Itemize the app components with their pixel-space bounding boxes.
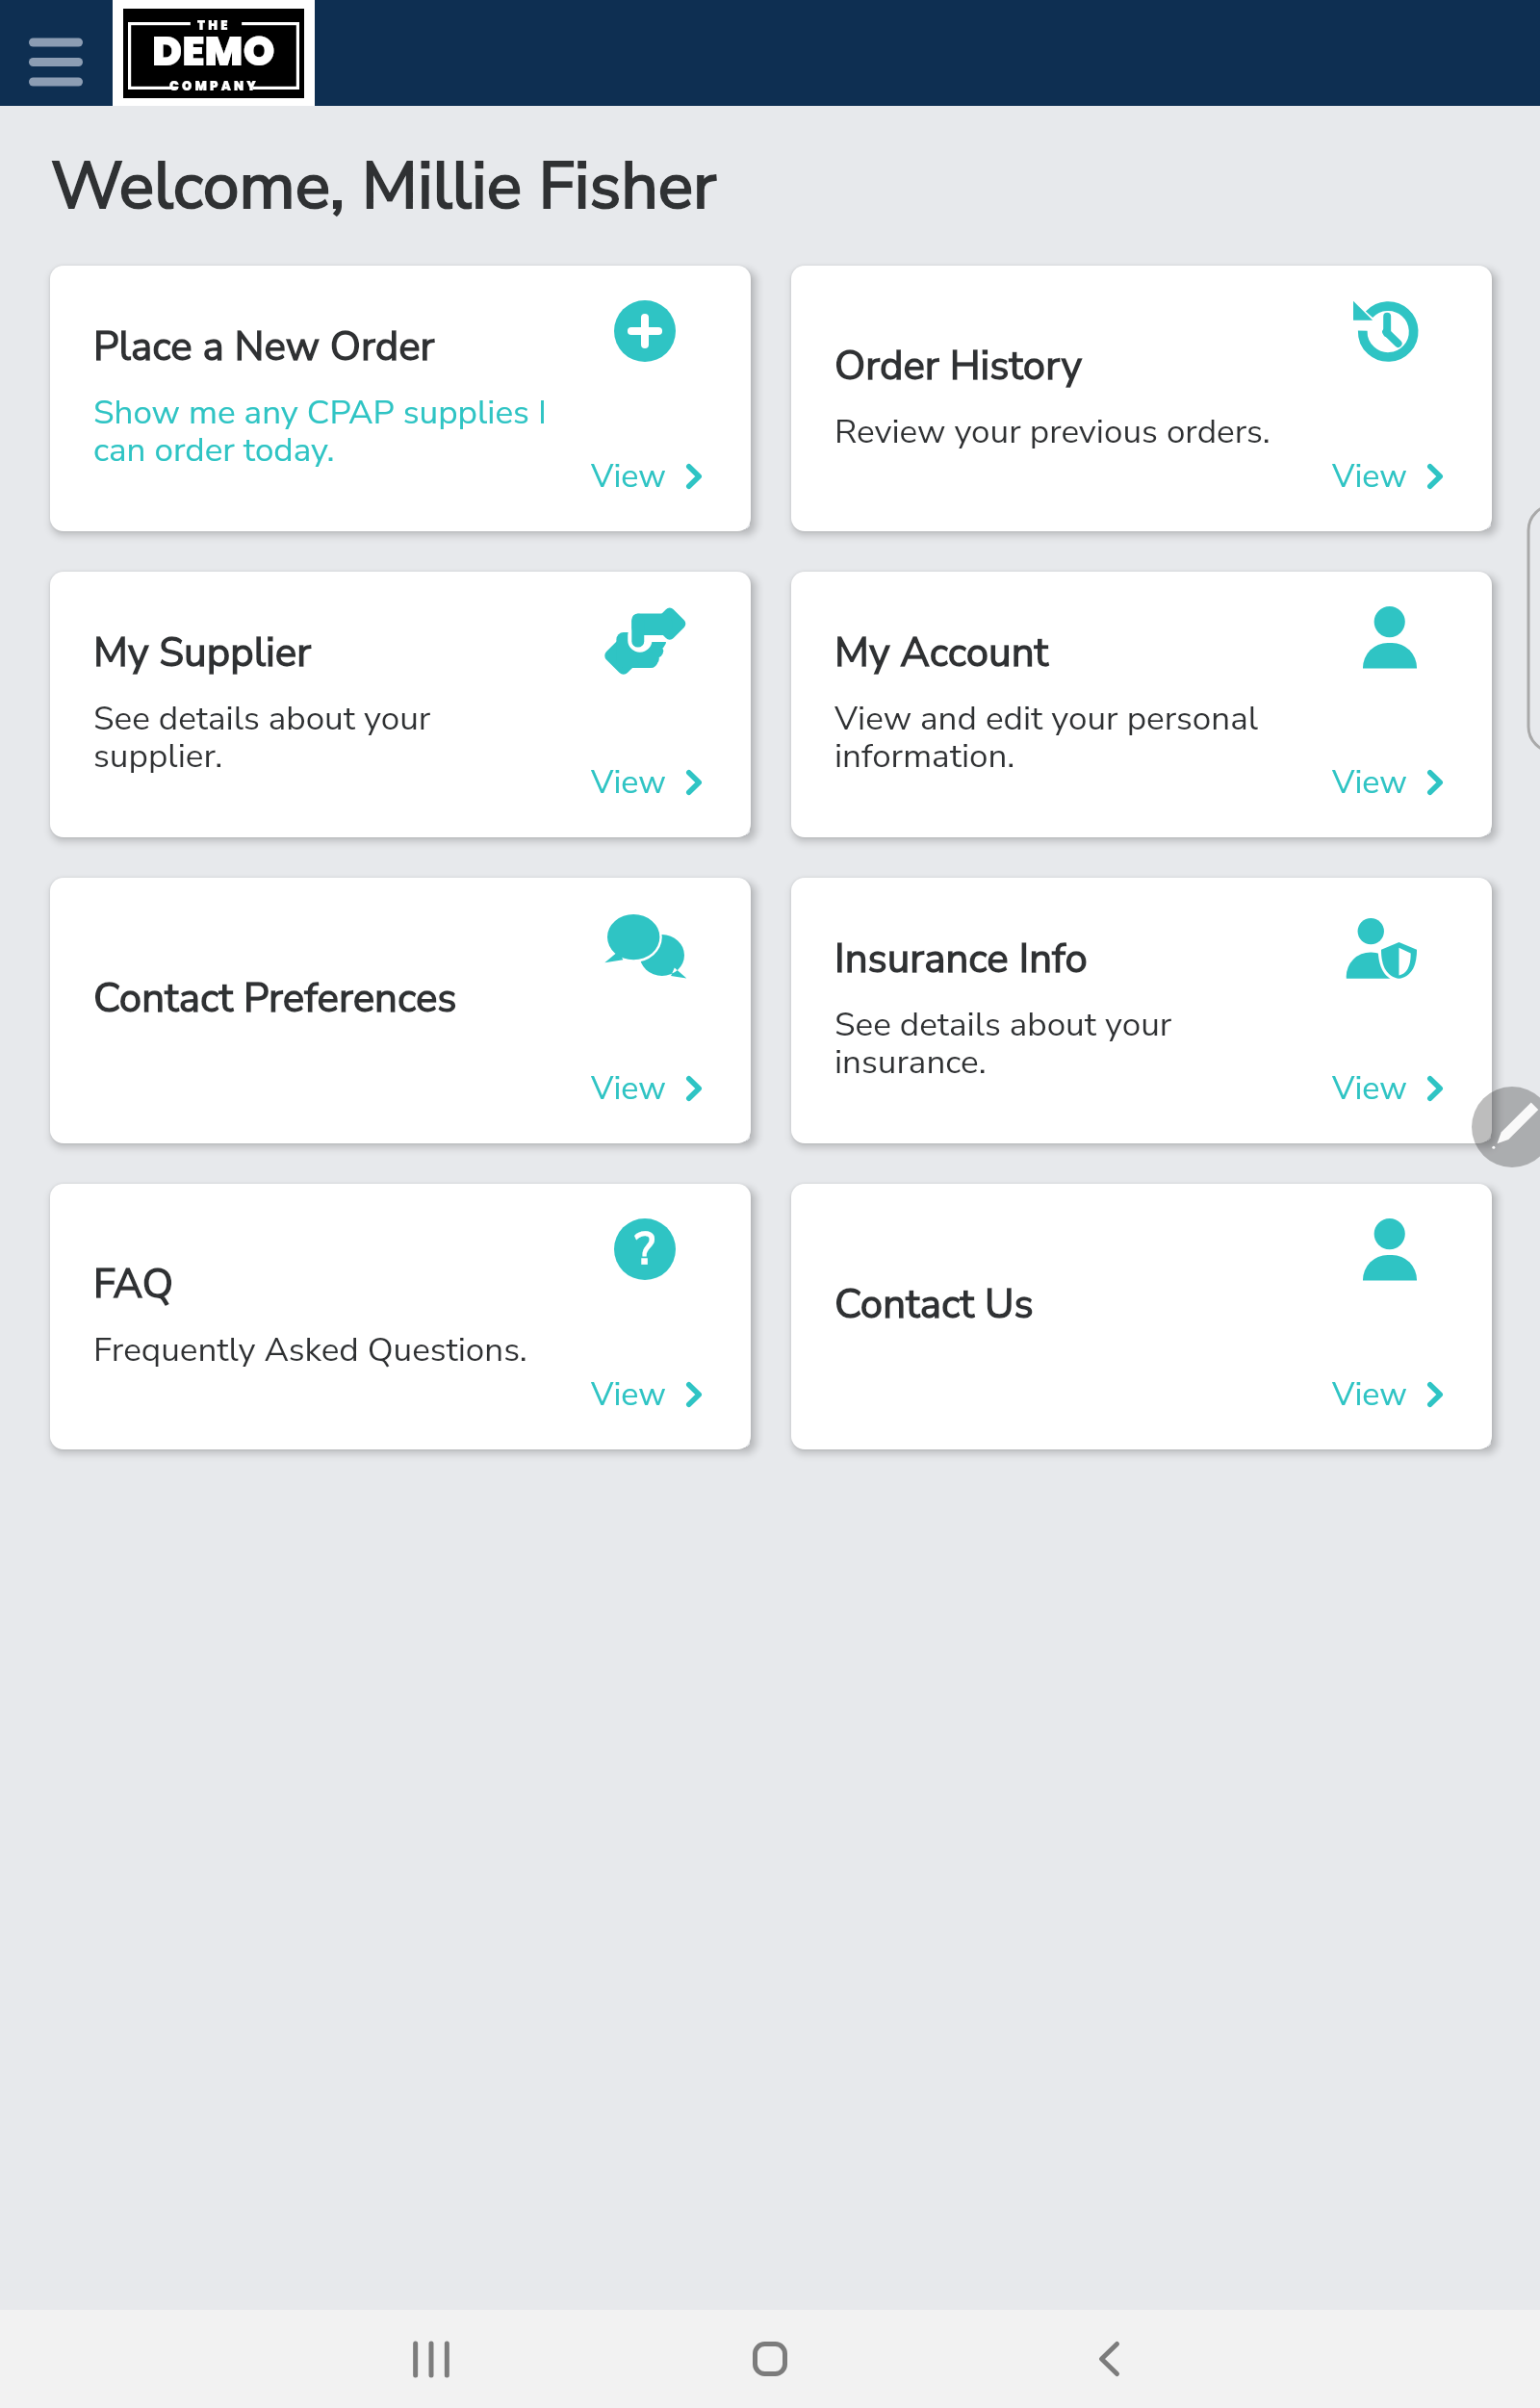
staticText: View	[591, 1066, 666, 1111]
staticText: View	[591, 760, 666, 805]
staticText: View and edit your personal information.	[834, 696, 1297, 779]
staticText: Insurance Info	[834, 932, 1088, 986]
button[interactable]: View	[591, 760, 702, 805]
staticText: Place a New Order	[93, 320, 435, 374]
staticText: Contact Preferences	[93, 971, 457, 1026]
staticText: ?	[635, 1218, 655, 1279]
button[interactable]: Back	[1051, 2310, 1167, 2408]
staticText: View	[591, 1372, 666, 1417]
staticText: FAQ	[93, 1257, 173, 1312]
button[interactable]: Recent apps	[373, 2310, 489, 2408]
staticText: View	[1332, 760, 1407, 805]
button[interactable]: View	[1332, 1372, 1443, 1417]
staticText: Review your previous orders.	[834, 409, 1270, 455]
staticText: Frequently Asked Questions.	[93, 1327, 527, 1373]
staticText: View	[1332, 1066, 1407, 1111]
staticText: THE	[197, 16, 231, 34]
staticText: My Account	[834, 626, 1049, 680]
button[interactable]: View	[1332, 1066, 1443, 1111]
button[interactable]: View	[591, 1372, 702, 1417]
button[interactable]: View	[591, 454, 702, 499]
button[interactable]: Contact Preferences	[50, 878, 751, 1143]
staticText: Welcome, Millie Fisher	[51, 141, 717, 231]
staticText: View	[591, 454, 666, 499]
staticText: Contact Us	[834, 1277, 1034, 1332]
button[interactable]: Home	[712, 2310, 828, 2408]
staticText: Order History	[834, 339, 1083, 394]
button[interactable]: My Account	[791, 572, 1492, 837]
button[interactable]: View	[591, 1066, 702, 1111]
staticText: Show me any CPAP supplies I can order to…	[93, 390, 556, 473]
staticText: COMPANY	[169, 77, 259, 94]
button[interactable]: Edit	[1472, 1087, 1540, 1167]
button[interactable]: The Demo Company	[113, 0, 315, 106]
staticText: See details about your insurance.	[834, 1002, 1297, 1085]
staticText: See details about your supplier.	[93, 696, 556, 779]
staticText: View	[1332, 454, 1407, 499]
button[interactable]: View	[1332, 454, 1443, 499]
button[interactable]: Insurance Info	[791, 878, 1492, 1143]
button[interactable]: My Supplier	[50, 572, 751, 837]
button[interactable]: Contact Us	[791, 1184, 1492, 1449]
button[interactable]: ?	[50, 1184, 751, 1449]
button[interactable]: View	[1332, 760, 1443, 805]
button[interactable]: Order History	[791, 266, 1492, 531]
button[interactable]: Open navigation menu	[29, 29, 83, 77]
staticText: View	[1332, 1372, 1407, 1417]
staticText: DEMO	[152, 23, 275, 80]
staticText: My Supplier	[93, 626, 312, 680]
button[interactable]: Place a New Order	[50, 266, 751, 531]
